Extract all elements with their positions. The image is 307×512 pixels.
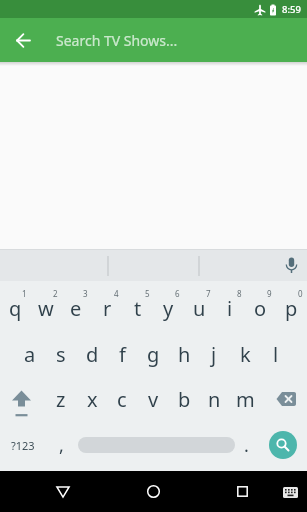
staticText: 2 — [53, 288, 58, 299]
staticText: q — [9, 295, 22, 322]
staticText: r — [103, 295, 112, 322]
button[interactable]: c — [107, 376, 137, 422]
button[interactable]: j — [199, 331, 229, 377]
staticText: g — [147, 341, 160, 368]
button[interactable]: f — [107, 331, 137, 377]
button[interactable] — [10, 27, 36, 53]
staticText: 6 — [175, 288, 180, 299]
staticText: 5 — [145, 288, 150, 299]
button[interactable]: q — [0, 285, 30, 331]
button[interactable]: a — [15, 331, 45, 377]
staticText: ?123 — [11, 438, 35, 453]
button[interactable]: s — [46, 331, 76, 377]
button[interactable]: p — [276, 285, 306, 331]
staticText: y — [163, 295, 174, 322]
staticText: 8:59 — [282, 3, 301, 16]
button[interactable]: ?123 — [2, 422, 44, 468]
button[interactable]: g — [138, 331, 168, 377]
staticText: s — [56, 341, 66, 368]
button[interactable] — [78, 437, 235, 453]
staticText: j — [211, 341, 217, 368]
staticText: Search TV Shows... — [56, 31, 178, 50]
staticText: d — [86, 341, 99, 368]
staticText: i — [227, 295, 233, 322]
staticText: o — [254, 295, 267, 322]
button[interactable]: y — [153, 285, 183, 331]
button[interactable]: o — [245, 285, 275, 331]
button[interactable]: . — [231, 422, 261, 468]
button[interactable] — [222, 471, 262, 512]
staticText: c — [117, 386, 127, 413]
staticText: m — [236, 386, 255, 413]
staticText: 4 — [114, 288, 119, 299]
staticText: l — [273, 341, 279, 368]
staticText: 8 — [237, 288, 242, 299]
button[interactable] — [43, 471, 83, 512]
staticText: p — [285, 295, 298, 322]
staticText: h — [178, 341, 191, 368]
staticText: k — [240, 341, 251, 368]
button[interactable]: i — [215, 285, 245, 331]
button[interactable]: d — [77, 331, 107, 377]
button[interactable] — [276, 482, 304, 502]
button[interactable]: e — [61, 285, 91, 331]
button[interactable]: m — [230, 376, 260, 422]
button[interactable]: t — [123, 285, 153, 331]
button[interactable]: b — [169, 376, 199, 422]
button[interactable]: l — [261, 331, 291, 377]
staticText: z — [56, 386, 66, 413]
button[interactable]: w — [31, 285, 61, 331]
staticText: 3 — [83, 288, 88, 299]
staticText: n — [208, 386, 221, 413]
button[interactable] — [269, 431, 297, 459]
staticText: a — [24, 341, 36, 368]
staticText: f — [119, 341, 126, 368]
staticText: , — [59, 433, 64, 458]
button[interactable] — [269, 376, 303, 422]
button[interactable]: , — [46, 422, 76, 468]
button[interactable]: h — [169, 331, 199, 377]
button[interactable] — [275, 249, 307, 281]
button[interactable]: v — [138, 376, 168, 422]
staticText: w — [38, 295, 54, 322]
staticText: v — [148, 386, 159, 413]
staticText: 0 — [298, 288, 303, 299]
staticText: 9 — [267, 288, 272, 299]
staticText: b — [178, 386, 191, 413]
button[interactable]: x — [77, 376, 107, 422]
staticText: 7 — [206, 288, 211, 299]
button[interactable]: z — [46, 376, 76, 422]
staticText: . — [244, 433, 249, 458]
button[interactable]: k — [230, 331, 260, 377]
staticText: e — [70, 295, 82, 322]
button[interactable]: u — [184, 285, 214, 331]
staticText: x — [87, 386, 98, 413]
button[interactable]: Search TV Shows... — [56, 18, 296, 62]
button[interactable]: n — [199, 376, 229, 422]
button[interactable] — [133, 471, 173, 512]
staticText: t — [134, 295, 142, 322]
staticText: 1 — [22, 288, 27, 299]
button[interactable] — [4, 376, 38, 422]
staticText: u — [193, 295, 206, 322]
button[interactable]: r — [92, 285, 122, 331]
